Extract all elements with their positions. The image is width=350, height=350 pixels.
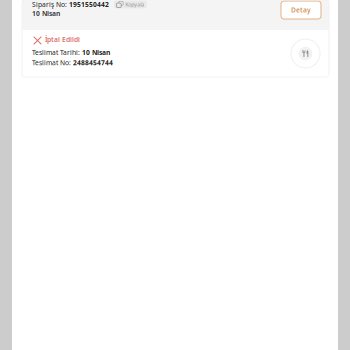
staticText: İptal Edildi	[45, 35, 80, 44]
button[interactable]: Kopyala	[114, 0, 147, 8]
button[interactable]: Detay	[281, 1, 321, 19]
staticText: Detay	[291, 6, 311, 14]
staticText: Kopyala	[125, 1, 144, 8]
staticText: 10 Nisan	[32, 9, 60, 18]
staticText: Sipariş No: 1951550442	[32, 0, 109, 9]
staticText: Teslimat No: 2488454744	[32, 58, 113, 67]
staticText: Teslimat Tarihi: 10 Nisan	[32, 48, 110, 57]
